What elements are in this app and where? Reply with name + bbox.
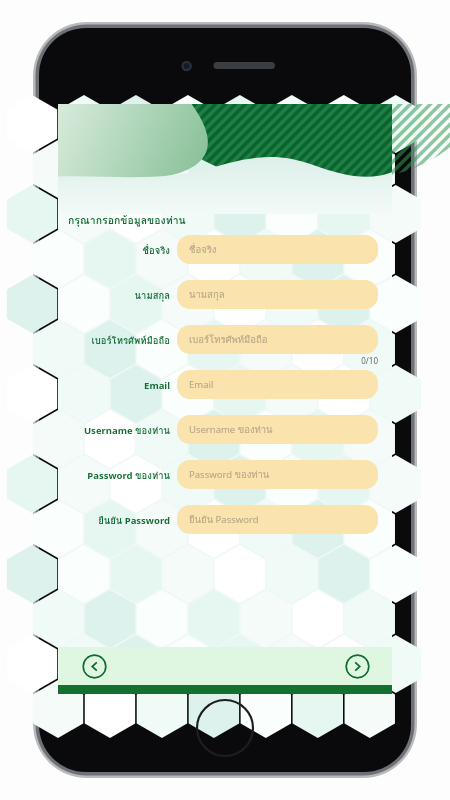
- staticText: เบอร์โทรศัพท์มือถือ: [91, 333, 170, 348]
- button[interactable]: เบอร์โทรศัพท์มือถือ: [177, 325, 378, 354]
- staticText: ยืนยัน Password: [98, 513, 170, 528]
- staticText: ยืนยัน Password: [189, 512, 259, 527]
- staticText: ชื่อจริง: [142, 243, 170, 258]
- button[interactable]: Next: [345, 654, 370, 679]
- staticText: Username ของท่าน: [83, 423, 170, 438]
- button[interactable]: ยืนยัน Password: [177, 505, 378, 534]
- staticText: 0/10: [177, 355, 378, 366]
- staticText: Password ของท่าน: [87, 468, 170, 483]
- button[interactable]: นามสกุล: [177, 280, 378, 309]
- staticText: Password ของท่าน: [189, 467, 270, 482]
- button[interactable]: Email: [177, 370, 378, 399]
- button[interactable]: Username ของท่าน: [177, 415, 378, 444]
- button[interactable]: Password ของท่าน: [177, 460, 378, 489]
- staticText: Email: [144, 379, 170, 392]
- staticText: กรุณากรอกข้อมูลของท่าน: [68, 212, 186, 229]
- staticText: Email: [189, 378, 214, 391]
- staticText: ชื่อจริง: [189, 242, 217, 257]
- button[interactable]: Back: [82, 654, 107, 679]
- staticText: Username ของท่าน: [189, 422, 273, 437]
- button[interactable]: ชื่อจริง: [177, 235, 378, 264]
- staticText: เบอร์โทรศัพท์มือถือ: [189, 332, 268, 347]
- staticText: นามสกุล: [134, 288, 170, 303]
- staticText: นามสกุล: [189, 287, 225, 302]
